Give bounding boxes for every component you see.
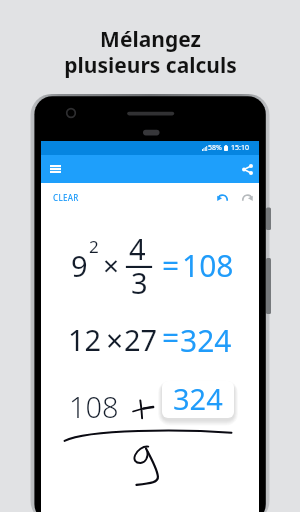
button[interactable]: CLEAR [48, 187, 84, 208]
staticText: CLEAR [53, 192, 79, 203]
staticText: 324 [180, 320, 232, 361]
button[interactable]: 324 [162, 381, 234, 418]
button[interactable]: Undo [214, 189, 230, 205]
staticText: Mélangez [100, 25, 201, 54]
staticText: × [103, 246, 120, 284]
staticText: plusieurs calculs [64, 51, 237, 80]
staticText: 15:10 [231, 143, 249, 153]
staticText: = [162, 245, 180, 286]
staticText: 12 [68, 320, 102, 359]
staticText: 9 [71, 246, 88, 285]
staticText: 108 [69, 387, 119, 426]
staticText: 58% [208, 143, 222, 153]
staticText: 4 [129, 229, 146, 268]
button[interactable]: Menu [45, 159, 65, 179]
staticText: 324 [173, 381, 223, 416]
staticText: 27 [124, 320, 158, 359]
staticText: × [106, 320, 124, 361]
staticText: 3 [131, 263, 148, 302]
staticText: 2 [89, 235, 99, 258]
button[interactable]: Share [237, 159, 257, 179]
button[interactable]: Redo [239, 189, 255, 205]
staticText: = [162, 317, 180, 358]
staticText: 108 [182, 245, 234, 286]
